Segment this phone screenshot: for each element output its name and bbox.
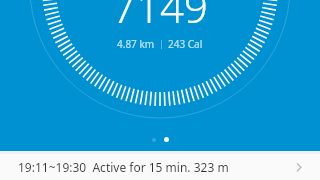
staticText: 4.87 km: [117, 37, 155, 51]
button[interactable]: [164, 137, 169, 142]
button[interactable]: 19:11~19:30 Active for 15 min. 323 m: [0, 154, 320, 180]
staticText: 19:11~19:30 Active for 15 min. 323 m: [18, 159, 292, 175]
button[interactable]: [152, 138, 156, 142]
button[interactable]: Open activity details: [292, 160, 306, 174]
staticText: 7149: [112, 0, 208, 35]
button[interactable]: 7149: [0, 0, 320, 151]
staticText: 243 Cal: [168, 37, 203, 51]
